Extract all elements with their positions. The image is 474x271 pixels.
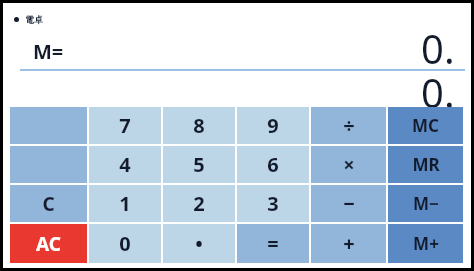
staticText: 6 [267, 151, 279, 178]
button[interactable]: 9 [237, 107, 309, 144]
staticText: MR [412, 153, 440, 176]
staticText: 1 [119, 190, 131, 217]
button[interactable]: MC [388, 107, 463, 144]
button[interactable]: 1 [89, 185, 161, 222]
button[interactable]: M− [388, 185, 463, 222]
staticText: ÷ [343, 112, 355, 139]
button[interactable]: 7 [89, 107, 161, 144]
staticText: 電卓 [25, 14, 43, 25]
button[interactable]: 5 [163, 146, 235, 183]
staticText: 9 [267, 112, 279, 139]
staticText: 4 [119, 151, 131, 178]
button[interactable]: 2 [163, 185, 235, 222]
button[interactable]: Plus [311, 224, 386, 263]
staticText: + [343, 230, 355, 257]
button[interactable]: Decimal point [163, 224, 235, 263]
button[interactable]: 4 [89, 146, 161, 183]
staticText: C [42, 191, 55, 217]
staticText: × [343, 151, 355, 178]
button[interactable]: Multiply [311, 146, 386, 183]
button[interactable]: MR [388, 146, 463, 183]
staticText: 3 [267, 190, 279, 217]
staticText: 0. [421, 65, 455, 119]
staticText: 8 [193, 112, 205, 139]
staticText: M= [33, 38, 64, 65]
staticText: M+ [413, 232, 439, 255]
staticText: = [267, 230, 279, 257]
button[interactable]: AC [10, 224, 87, 263]
staticText: • [195, 230, 203, 257]
staticText: 0. [421, 21, 455, 75]
button[interactable]: Divide [311, 107, 386, 144]
staticText: 7 [119, 112, 131, 139]
staticText: AC [36, 231, 61, 257]
button[interactable]: C [10, 185, 87, 222]
button[interactable]: Equals [237, 224, 309, 263]
staticText: 0 [119, 230, 131, 257]
button[interactable]: 3 [237, 185, 309, 222]
button[interactable]: 0 [89, 224, 161, 263]
button[interactable]: M+ [388, 224, 463, 263]
staticText: 5 [193, 151, 205, 178]
staticText: M− [413, 192, 439, 215]
button[interactable]: 8 [163, 107, 235, 144]
button[interactable]: 6 [237, 146, 309, 183]
staticText: 2 [193, 190, 205, 217]
staticText: − [343, 190, 355, 217]
staticText: MC [412, 114, 439, 137]
button[interactable]: Minus [311, 185, 386, 222]
